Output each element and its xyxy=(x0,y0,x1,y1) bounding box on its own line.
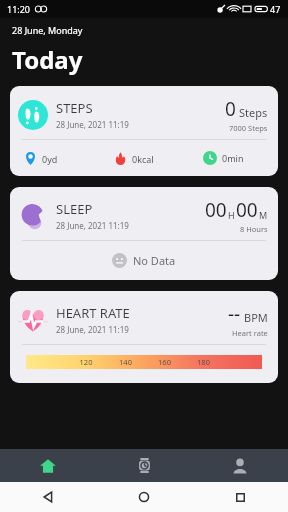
staticText: 140 xyxy=(106,357,145,367)
staticText: SLEEP xyxy=(56,200,93,218)
staticText: 0kcal xyxy=(132,153,154,165)
staticText: 160 xyxy=(145,357,184,367)
staticText: 0 xyxy=(225,96,236,122)
staticText: No Data xyxy=(133,253,176,268)
staticText: M xyxy=(259,209,268,221)
staticText: 28 June, 2021 11:19 xyxy=(56,324,129,335)
button[interactable]: SLEEP xyxy=(10,187,278,280)
staticText: 28 June, Monday xyxy=(12,24,83,36)
staticText: Steps xyxy=(239,105,268,120)
staticText: -- xyxy=(228,301,241,327)
staticText: 11:20 xyxy=(7,3,31,15)
button[interactable]: Profile xyxy=(192,449,288,482)
staticText: BPM xyxy=(244,310,268,325)
staticText: 7000 Steps xyxy=(229,123,268,133)
staticText: 28 June, 2021 11:19 xyxy=(56,220,129,231)
staticText: H xyxy=(228,209,235,221)
button[interactable]: Device xyxy=(96,449,192,482)
staticText: HEART RATE xyxy=(56,304,130,322)
staticText: 0min xyxy=(222,152,244,164)
button[interactable]: STEPS xyxy=(10,86,278,176)
staticText: STEPS xyxy=(56,99,93,117)
staticText: 28 June, 2021 11:19 xyxy=(56,119,129,130)
button[interactable]: HEART RATE xyxy=(10,291,278,383)
staticText: 120 xyxy=(66,357,106,367)
staticText xyxy=(26,357,66,367)
staticText: Heart rate xyxy=(232,328,268,338)
staticText: 00 xyxy=(205,197,227,223)
staticText: Today xyxy=(12,43,83,76)
staticText: 47 xyxy=(270,3,281,15)
staticText xyxy=(223,357,262,367)
staticText: 8 Hours xyxy=(240,224,268,234)
staticText: 180 xyxy=(184,357,223,367)
button[interactable]: Home xyxy=(0,449,96,482)
staticText: 00 xyxy=(236,197,258,223)
staticText: 0yd xyxy=(42,153,58,165)
